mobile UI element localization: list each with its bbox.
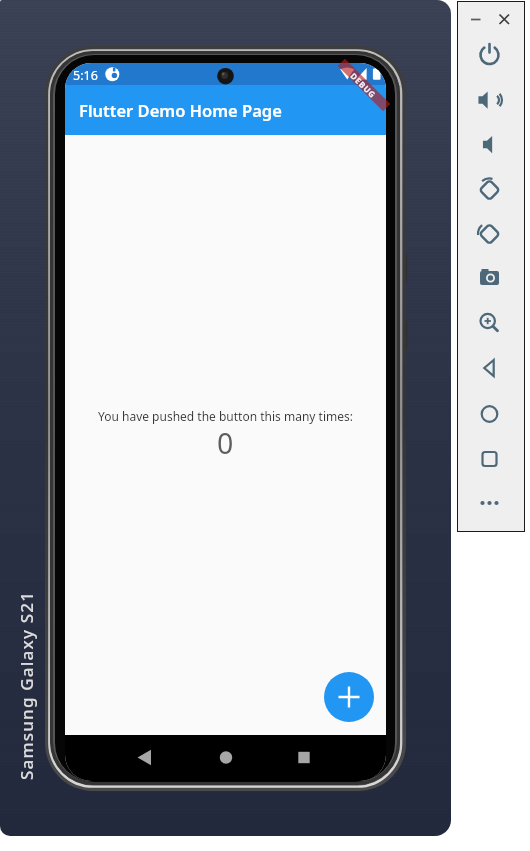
staticText: 0 [217, 424, 234, 463]
button[interactable] [469, 217, 511, 249]
staticText: DEBUG [349, 70, 379, 100]
button[interactable] [469, 3, 511, 35]
button[interactable] [469, 84, 511, 116]
staticText: Samsung Galaxy S21 [15, 590, 38, 780]
button[interactable] [65, 735, 172, 781]
button[interactable] [172, 735, 279, 781]
button[interactable] [279, 735, 386, 781]
button[interactable] [469, 39, 511, 71]
button[interactable] [469, 487, 511, 519]
staticText: 5:16 [73, 67, 98, 84]
button[interactable] [469, 173, 511, 205]
button[interactable] [469, 352, 511, 384]
button[interactable] [469, 398, 511, 430]
button[interactable] [469, 307, 511, 339]
button[interactable] [469, 262, 511, 294]
button[interactable] [324, 672, 374, 722]
staticText: You have pushed the button this many tim… [98, 408, 353, 424]
button[interactable] [469, 128, 511, 160]
staticText: Flutter Demo Home Page [79, 99, 282, 121]
button[interactable] [469, 443, 511, 475]
